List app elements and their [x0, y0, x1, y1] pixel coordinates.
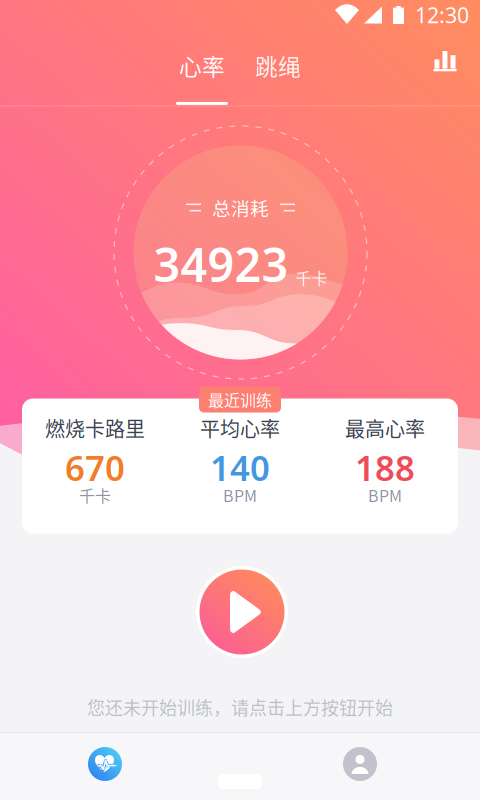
button[interactable]: 跳绳	[240, 30, 316, 110]
staticText: 12:30	[415, 1, 469, 29]
staticText: 燃烧卡路里	[45, 413, 145, 442]
staticText: 您还未开始训练，请点击上方按钮开始	[87, 694, 393, 720]
button[interactable]: Profile	[334, 738, 386, 790]
button[interactable]: Heart rate	[79, 738, 131, 790]
button[interactable]: Statistics	[422, 38, 468, 84]
button[interactable]: 心率	[164, 30, 240, 110]
staticText: 心率	[179, 49, 225, 82]
staticText: 千卡	[295, 266, 327, 289]
staticText: 188	[355, 444, 415, 490]
staticText: BPM	[368, 483, 402, 507]
staticText: 平均心率	[200, 413, 280, 442]
staticText: 总消耗	[212, 194, 269, 221]
button[interactable]: Start workout	[192, 562, 292, 662]
staticText: 140	[210, 444, 270, 490]
staticText: 670	[65, 444, 125, 490]
staticText: 最高心率	[345, 413, 425, 442]
staticText: BPM	[223, 483, 257, 507]
staticText: 最近训练	[208, 388, 272, 411]
staticText: 跳绳	[255, 49, 301, 82]
staticText: 34923	[153, 233, 288, 295]
staticText: 千卡	[79, 483, 111, 507]
